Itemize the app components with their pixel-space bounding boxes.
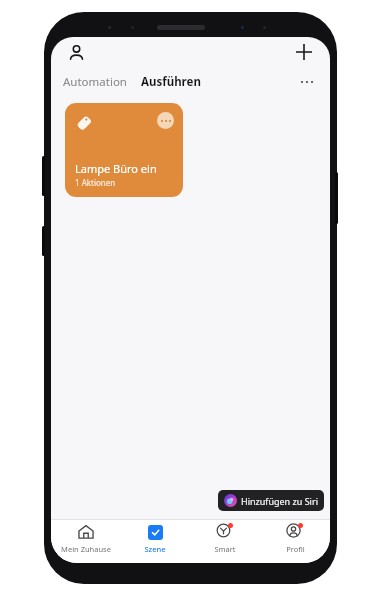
button[interactable]: Szene [120,522,190,563]
button[interactable]: Smart [190,522,260,563]
staticText: Szene [144,544,166,554]
staticText: 1 Aktionen [75,177,116,188]
button[interactable]: Profil [260,522,330,563]
button[interactable]: Mein Zuhause [51,522,120,563]
staticText: Automation [63,74,127,90]
button[interactable]: More options [295,70,319,94]
staticText: Ausführen [141,74,201,90]
staticText: Smart [214,544,236,554]
button[interactable]: Hinzufügen zu Siri [218,490,324,511]
button[interactable]: Add [290,38,318,66]
staticText: Profil [286,544,305,554]
button[interactable]: Ausführen [140,71,202,93]
staticText: Hinzufügen zu Siri [241,495,318,507]
button[interactable]: Scene options [65,103,183,197]
button[interactable]: Automation [62,71,128,93]
staticText: Mein Zuhause [61,544,111,554]
button[interactable]: Account [63,39,89,65]
staticText: Lampe Büro ein [75,161,157,176]
button[interactable]: Scene options [157,112,174,129]
